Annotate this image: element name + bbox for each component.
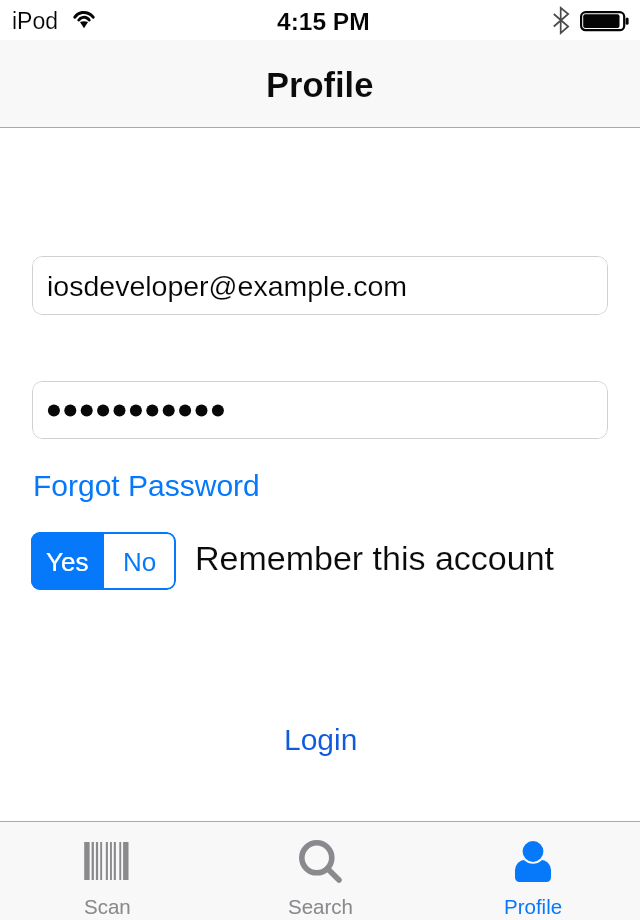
staticText: 4:15 PM xyxy=(277,8,370,35)
button[interactable]: Forgot Password xyxy=(31,465,262,507)
staticText: Scan xyxy=(84,895,131,918)
button[interactable]: Yes xyxy=(31,532,104,590)
button[interactable] xyxy=(32,381,608,439)
staticText: Forgot Password xyxy=(33,469,260,503)
staticText: Search xyxy=(288,895,353,918)
other: Scan xyxy=(84,842,131,880)
button[interactable]: Search xyxy=(214,822,426,920)
button[interactable]: iosdeveloper@example.com xyxy=(32,256,608,315)
staticText: No xyxy=(123,547,157,576)
staticText: Yes xyxy=(46,547,89,576)
button[interactable]: Profile xyxy=(427,822,639,920)
staticText: iPod xyxy=(12,8,59,34)
staticText: Remember this account xyxy=(195,539,555,577)
other: Profile xyxy=(515,841,551,882)
staticText: Profile xyxy=(504,895,563,918)
button[interactable]: Scan xyxy=(1,822,213,920)
staticText: iosdeveloper@example.com xyxy=(47,270,408,302)
button[interactable]: Login xyxy=(274,716,368,764)
other: Search xyxy=(299,840,341,882)
staticText: Login xyxy=(284,723,358,757)
staticText: Profile xyxy=(266,66,374,105)
button[interactable]: No xyxy=(104,532,176,590)
